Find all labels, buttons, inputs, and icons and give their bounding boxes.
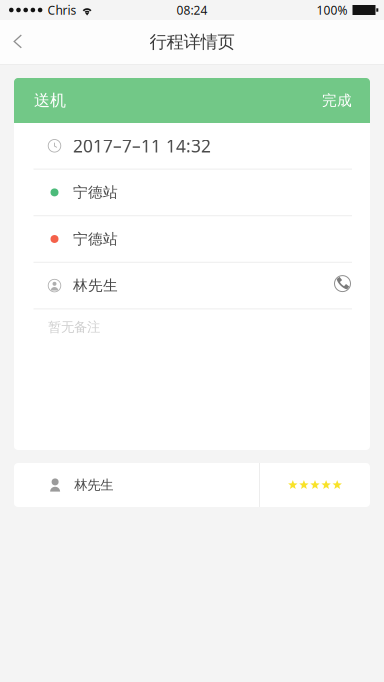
button[interactable]: 送机 xyxy=(14,78,370,123)
staticText: 林先生 xyxy=(73,277,118,295)
staticText: 100% xyxy=(316,2,347,18)
staticText: 完成 xyxy=(322,91,352,109)
staticText: 2017–7–11 14:32 xyxy=(73,134,211,157)
staticText: 08:24 xyxy=(176,2,207,18)
staticText: 宁德站 xyxy=(73,183,118,201)
button[interactable]: Back xyxy=(0,20,43,64)
staticText: Chris xyxy=(47,2,76,18)
staticText: 行程详情页 xyxy=(149,31,234,53)
staticText: 暂无备注 xyxy=(48,319,100,335)
button[interactable]: Call passenger xyxy=(322,277,351,294)
button[interactable]: 林先生 xyxy=(14,463,370,507)
staticText: 宁德站 xyxy=(73,230,118,248)
staticText: 送机 xyxy=(34,91,66,110)
staticText: 林先生 xyxy=(74,477,113,493)
